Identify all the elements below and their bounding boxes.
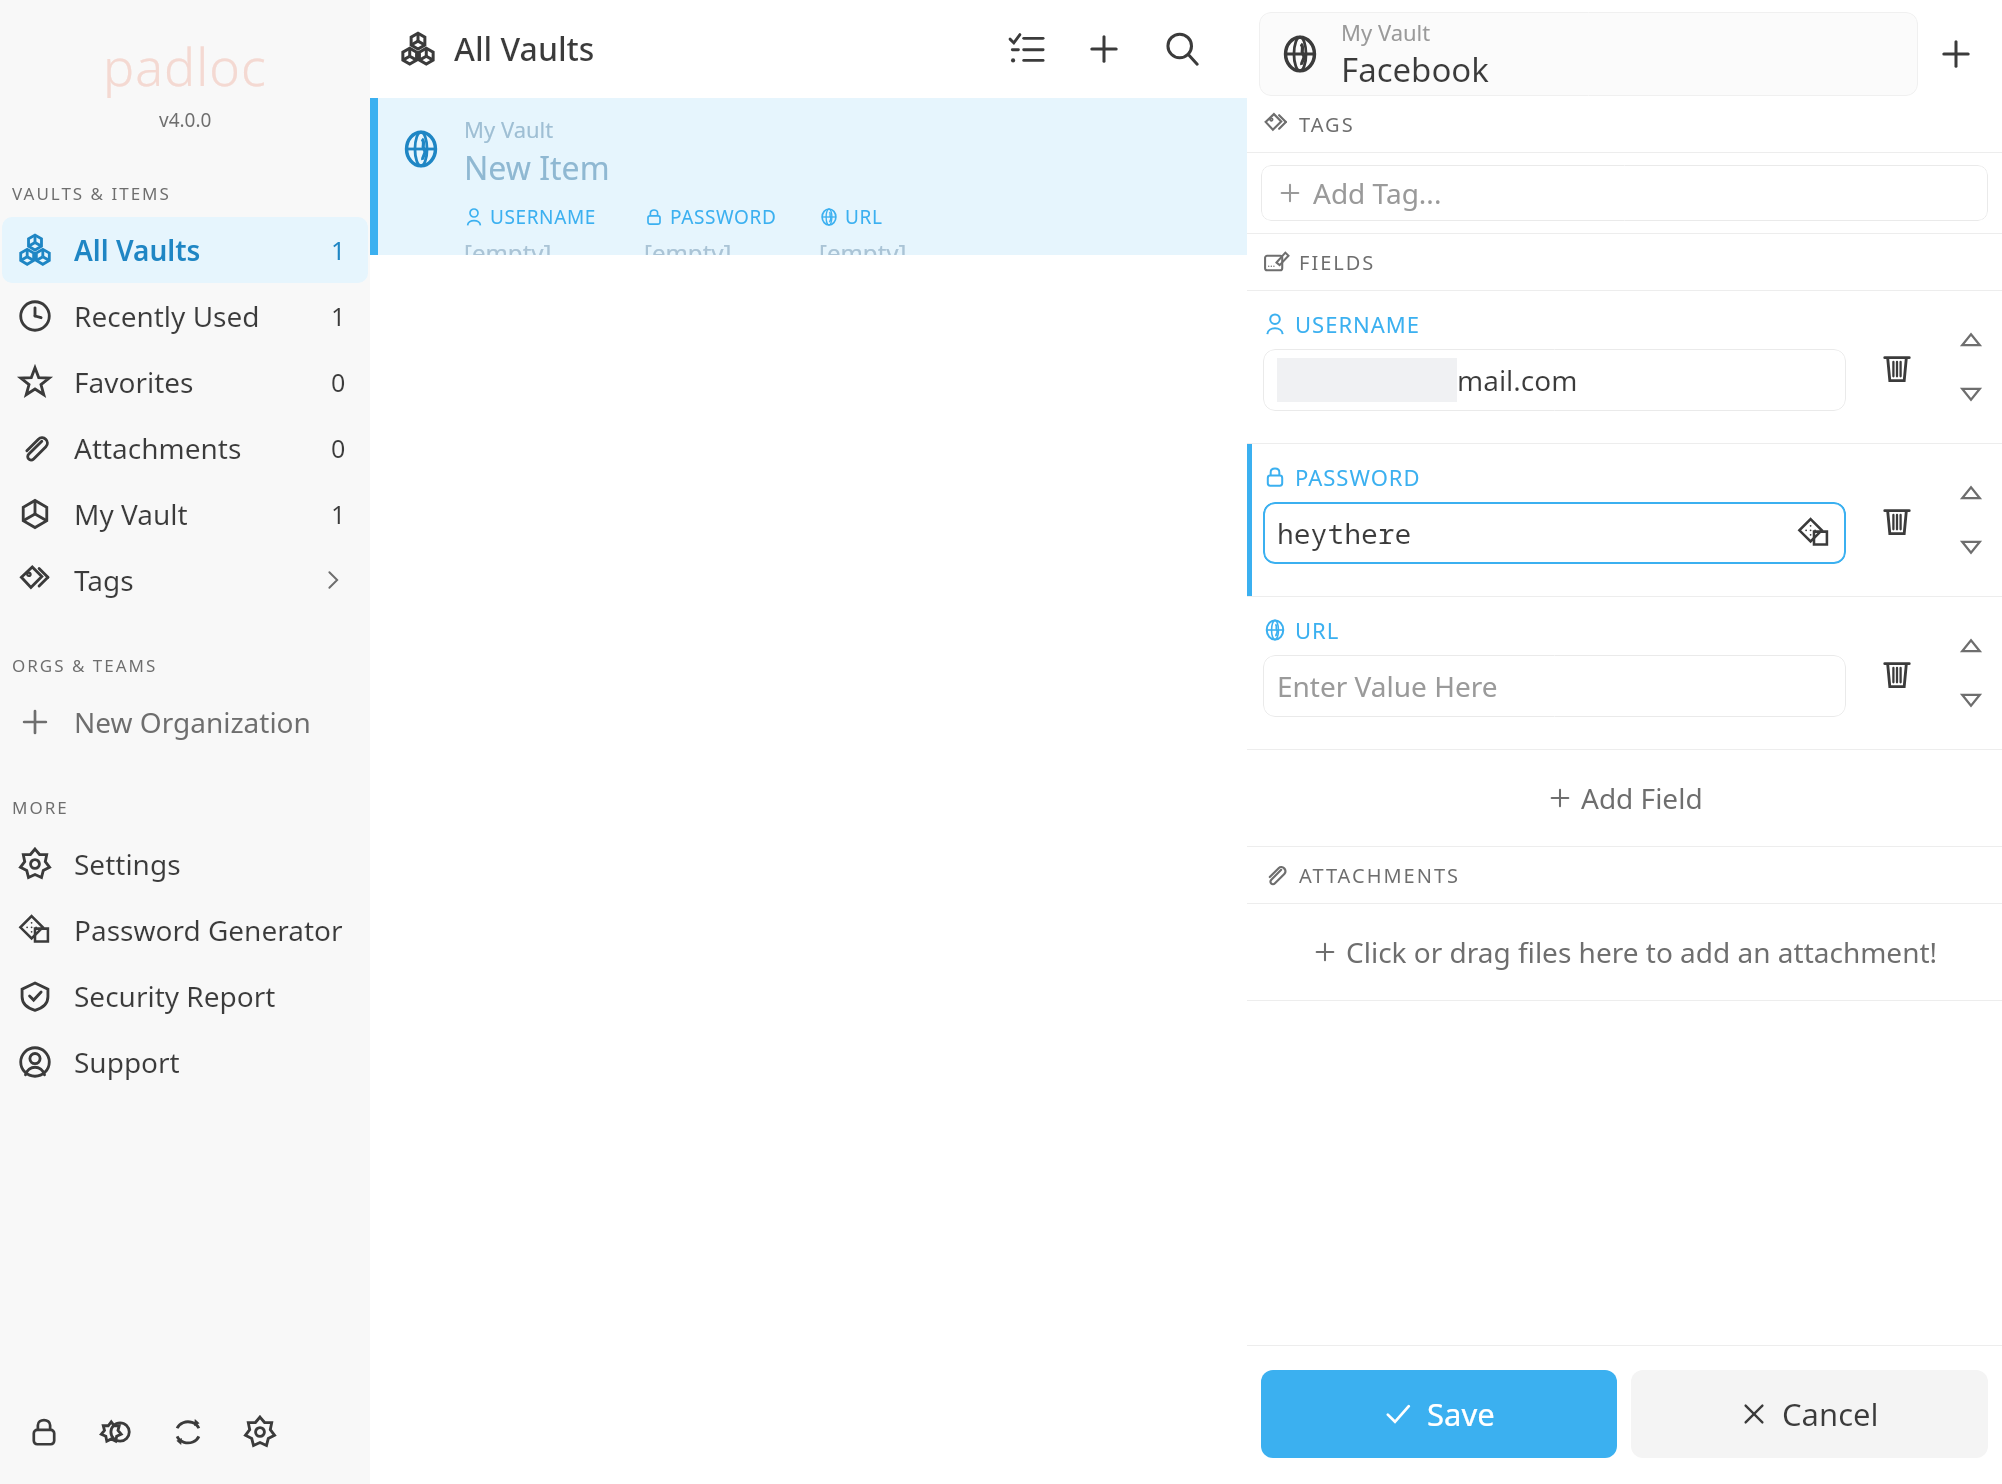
staticText: Recently Used [74, 297, 260, 335]
staticText: mail.com [1457, 361, 1578, 399]
button[interactable]: Sync [152, 1396, 224, 1468]
staticText: New Item [464, 146, 610, 190]
staticText: All Vaults [454, 27, 595, 71]
staticText: [empty] [819, 236, 907, 255]
staticText: Cancel [1782, 1393, 1879, 1435]
button[interactable]: Security Report [2, 963, 368, 1029]
staticText: padloc [103, 30, 267, 101]
staticText: 1 [331, 233, 346, 267]
button[interactable]: Move down [1949, 678, 1993, 722]
button[interactable]: Delete field [1854, 291, 1940, 443]
staticText: PASSWORD [1295, 462, 1421, 492]
button[interactable]: Password Generator [2, 897, 368, 963]
button[interactable]: Move down [1949, 372, 1993, 416]
button[interactable]: Settings [2, 831, 368, 897]
staticText: USERNAME [490, 204, 596, 230]
staticText: 1 [331, 299, 346, 333]
staticText: Security Report [74, 977, 276, 1015]
button[interactable]: Search [1143, 10, 1221, 88]
staticText: 0 [331, 431, 346, 465]
button[interactable]: Move up [1949, 318, 1993, 362]
button[interactable]: Move down [1949, 525, 1993, 569]
button[interactable]: Select items [987, 10, 1065, 88]
button[interactable]: My Vault [370, 98, 1247, 255]
staticText: PASSWORD [670, 204, 777, 230]
staticText: URL [1295, 615, 1340, 645]
button[interactable]: New Organization [2, 689, 368, 755]
button[interactable]: Add [1918, 16, 1994, 92]
button[interactable]: My Vault [1259, 12, 1918, 96]
staticText: Attachments [74, 429, 242, 467]
button[interactable]: Theme [80, 1396, 152, 1468]
button[interactable]: Add Tag... [1261, 165, 1988, 221]
button[interactable]: heythere [1263, 502, 1846, 564]
staticText: VAULTS & ITEMS [12, 182, 171, 205]
staticText: USERNAME [1295, 309, 1421, 339]
button[interactable]: Settings [224, 1396, 296, 1468]
staticText: Support [74, 1043, 180, 1081]
staticText: All Vaults [74, 231, 201, 269]
button[interactable]: Lock [8, 1396, 80, 1468]
staticText: 1 [331, 497, 346, 531]
staticText: FIELDS [1299, 249, 1376, 276]
button[interactable]: Save [1261, 1370, 1617, 1458]
button[interactable]: Favorites [2, 349, 368, 415]
button[interactable]: Add item [1065, 10, 1143, 88]
staticText: Click or drag files here to add an attac… [1346, 933, 1938, 971]
staticText: Favorites [74, 363, 194, 401]
button[interactable]: Support [2, 1029, 368, 1095]
staticText: MORE [12, 796, 69, 819]
staticText: Password Generator [74, 911, 343, 949]
button[interactable]: Generate password [1794, 513, 1834, 553]
button[interactable]: mail.com [1263, 349, 1846, 411]
button[interactable]: Add Field [1247, 750, 2002, 846]
staticText: [empty] [464, 236, 552, 255]
staticText: Facebook [1341, 47, 1489, 92]
staticText: New Organization [74, 703, 311, 741]
staticText: heythere [1277, 514, 1412, 552]
button[interactable]: Cancel [1631, 1370, 1988, 1458]
staticText: Add Field [1581, 779, 1703, 817]
staticText: TAGS [1299, 111, 1355, 138]
staticText: Settings [74, 845, 181, 883]
button[interactable]: Move up [1949, 624, 1993, 668]
staticText: v4.0.0 [159, 107, 212, 133]
staticText: My Vault [74, 495, 188, 533]
staticText: Save [1427, 1393, 1495, 1435]
staticText: URL [845, 204, 883, 230]
button[interactable]: My Vault [2, 481, 368, 547]
button[interactable]: Delete field [1854, 597, 1940, 749]
button[interactable]: All Vaults [2, 217, 368, 283]
staticText: Add Tag... [1313, 174, 1442, 212]
button[interactable]: Attachments [2, 415, 368, 481]
staticText: My Vault [1341, 17, 1431, 47]
staticText: ATTACHMENTS [1299, 862, 1461, 889]
staticText: Tags [74, 561, 134, 599]
staticText: ORGS & TEAMS [12, 654, 158, 677]
button[interactable]: Recently Used [2, 283, 368, 349]
button[interactable]: Delete field [1854, 444, 1940, 596]
button[interactable]: Move up [1949, 471, 1993, 515]
staticText: 0 [331, 365, 346, 399]
button[interactable]: Tags [2, 547, 368, 613]
staticText: My Vault [464, 114, 554, 144]
staticText: Enter Value Here [1277, 667, 1498, 705]
button[interactable]: Enter Value Here [1263, 655, 1846, 717]
staticText: [empty] [644, 236, 732, 255]
button[interactable]: Click or drag files here to add an attac… [1247, 904, 2002, 1000]
